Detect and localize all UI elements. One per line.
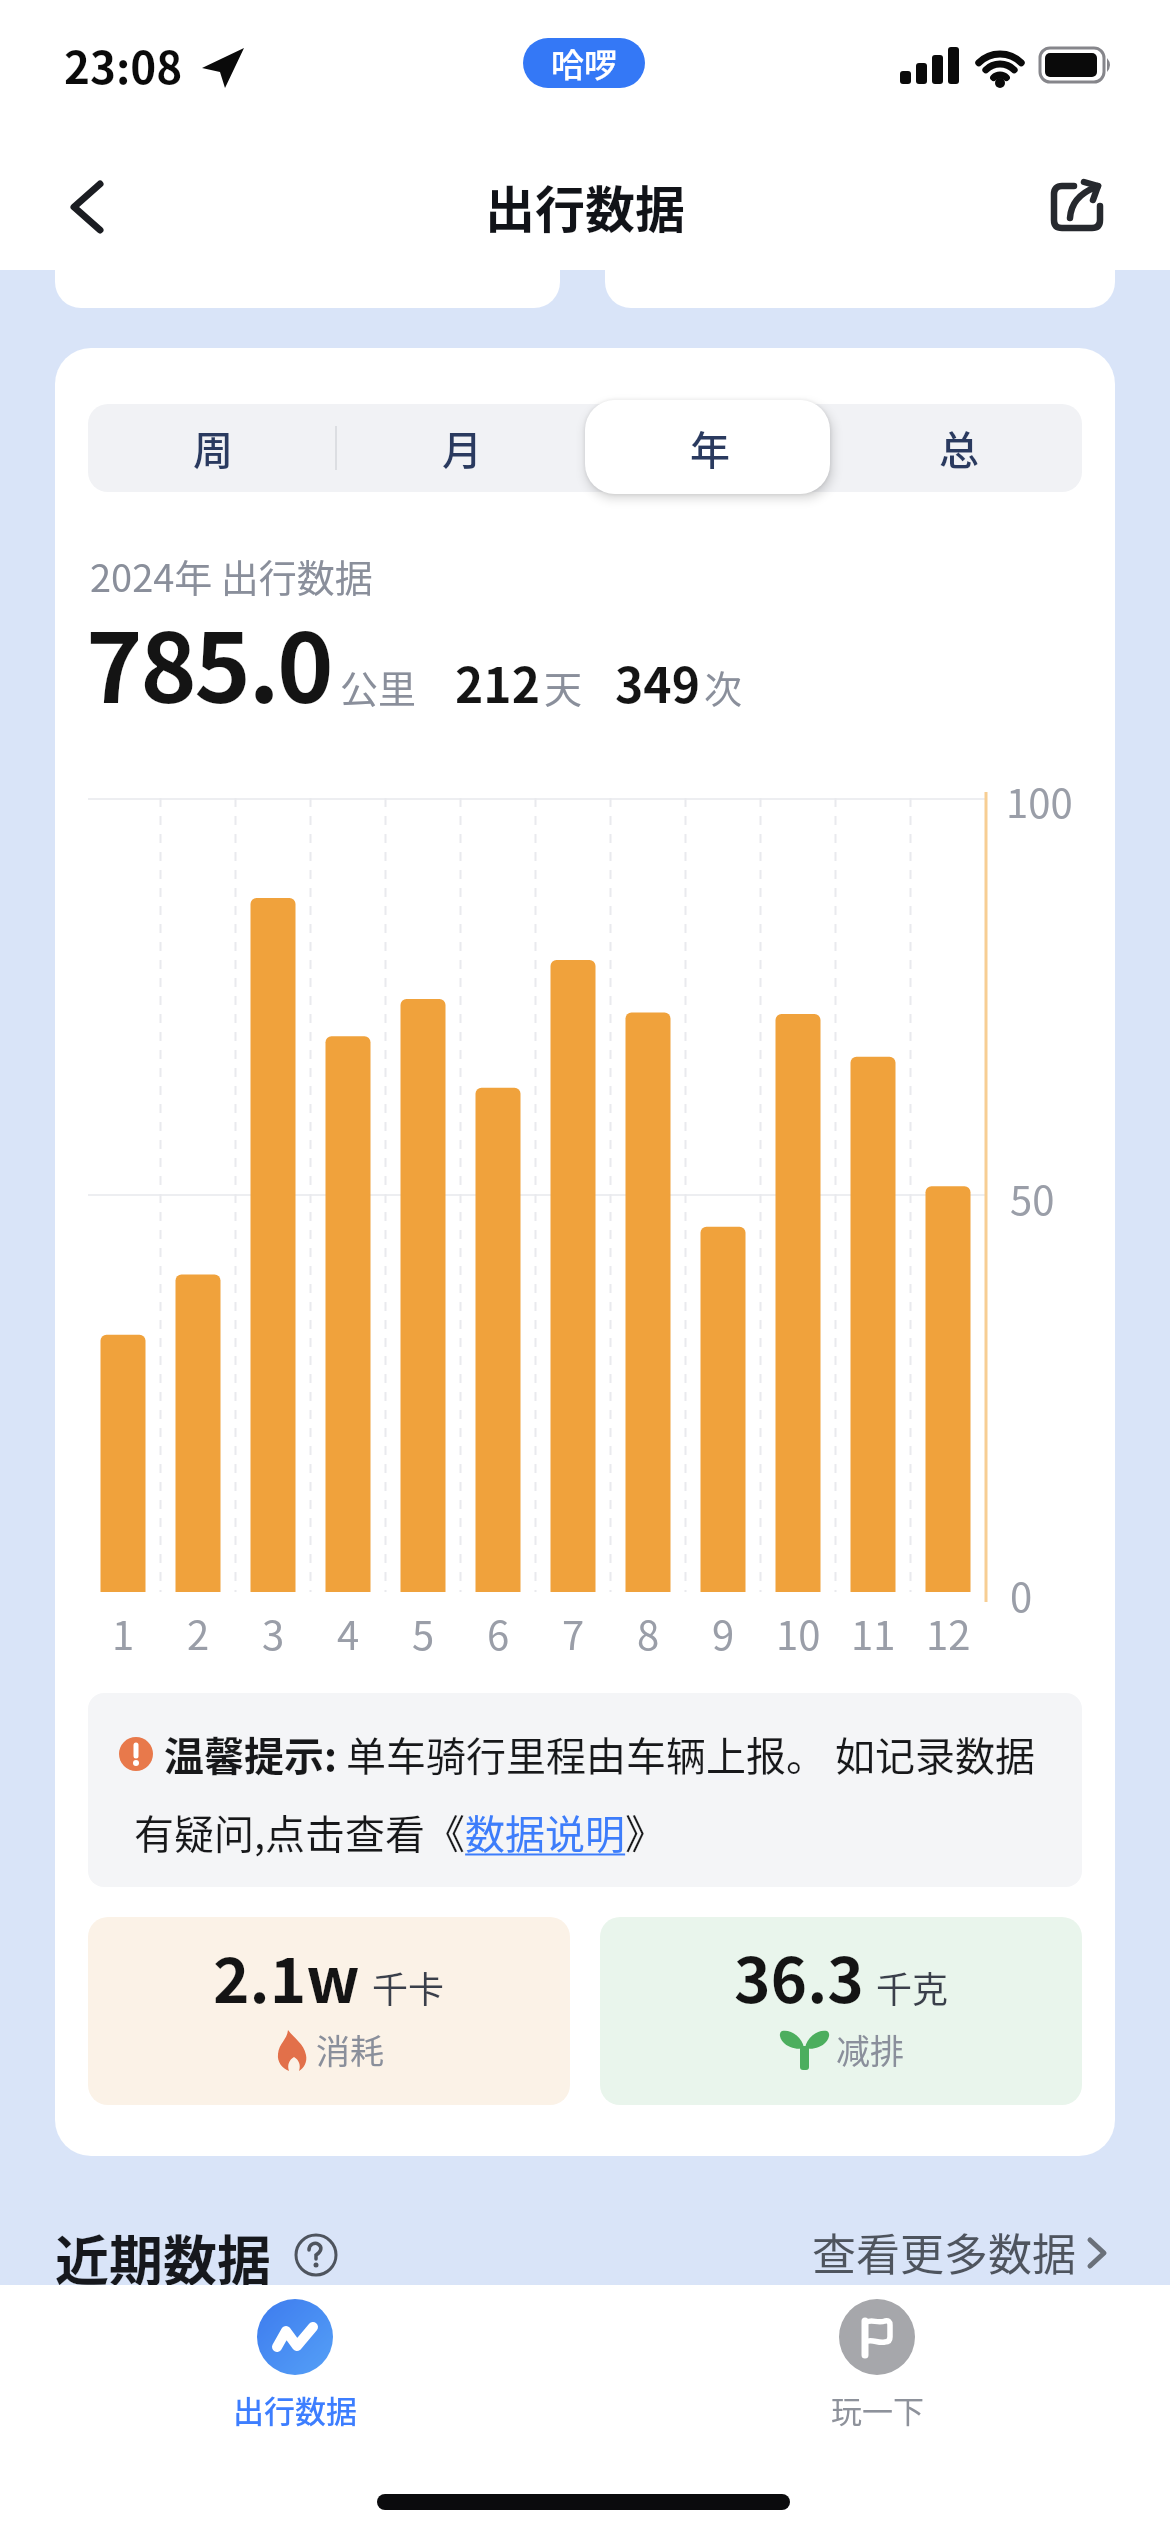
- staticText: 349: [615, 647, 700, 717]
- staticText: 消耗: [316, 2025, 384, 2074]
- button[interactable]: 有疑问,点击查看《数据说明》: [134, 1803, 666, 1861]
- staticText: 212: [455, 647, 540, 717]
- staticText: 3: [262, 1604, 285, 1662]
- staticText: 2: [187, 1604, 210, 1662]
- staticText: 温馨提示: 单车骑行里程由车辆上报。 如记录数据: [164, 1725, 1035, 1783]
- staticText: 千卡: [372, 1961, 445, 2013]
- button[interactable]: 月: [337, 404, 586, 492]
- staticText: 2024年 出行数据: [90, 548, 373, 603]
- button[interactable]: 出行数据: [195, 2295, 395, 2435]
- staticText: 10: [776, 1604, 821, 1662]
- staticText: 0: [1010, 1566, 1033, 1624]
- staticText: 公里: [340, 659, 417, 714]
- staticText: 2.1w: [213, 1931, 360, 2021]
- staticText: 8: [637, 1604, 660, 1662]
- staticText: 9: [712, 1604, 735, 1662]
- staticText: 总: [939, 419, 979, 477]
- staticText: 出行数据: [233, 2387, 357, 2432]
- staticText: 周: [193, 419, 233, 477]
- staticText: 查看更多数据: [812, 2220, 1076, 2284]
- button[interactable]: 年: [585, 404, 834, 492]
- staticText: 出行数据: [485, 170, 685, 242]
- staticText: 785.0: [86, 592, 332, 731]
- staticText: 减排: [836, 2025, 904, 2074]
- staticText: 50: [1010, 1169, 1055, 1227]
- staticText: 36.3: [734, 1931, 864, 2021]
- button[interactable]: 总: [834, 404, 1083, 492]
- staticText: 1: [112, 1604, 135, 1662]
- staticText: 4: [337, 1604, 360, 1662]
- staticText: 11: [851, 1604, 896, 1662]
- staticText: 12: [926, 1604, 971, 1662]
- button[interactable]: 36.3: [600, 1917, 1082, 2105]
- staticText: 23:08: [64, 33, 183, 97]
- staticText: 天: [544, 659, 583, 714]
- staticText: 5: [412, 1604, 435, 1662]
- staticText: 玩一下: [831, 2387, 924, 2432]
- staticText: 哈啰: [551, 39, 617, 87]
- staticText: 7: [562, 1604, 585, 1662]
- button[interactable]: 查看更多数据: [812, 2220, 1116, 2284]
- button[interactable]: [56, 176, 120, 240]
- button[interactable]: 周: [88, 404, 337, 492]
- staticText: 年: [690, 419, 730, 477]
- staticText: 月: [442, 419, 482, 477]
- button[interactable]: 玩一下: [777, 2295, 977, 2435]
- staticText: 6: [487, 1604, 510, 1662]
- staticText: 千克: [876, 1961, 949, 2013]
- button[interactable]: 2.1w: [88, 1917, 570, 2105]
- button[interactable]: [1050, 174, 1118, 242]
- staticText: 100: [1006, 772, 1073, 830]
- button[interactable]: 哈啰: [523, 38, 645, 88]
- staticText: 近期数据: [55, 2218, 271, 2296]
- staticText: 次: [704, 659, 743, 714]
